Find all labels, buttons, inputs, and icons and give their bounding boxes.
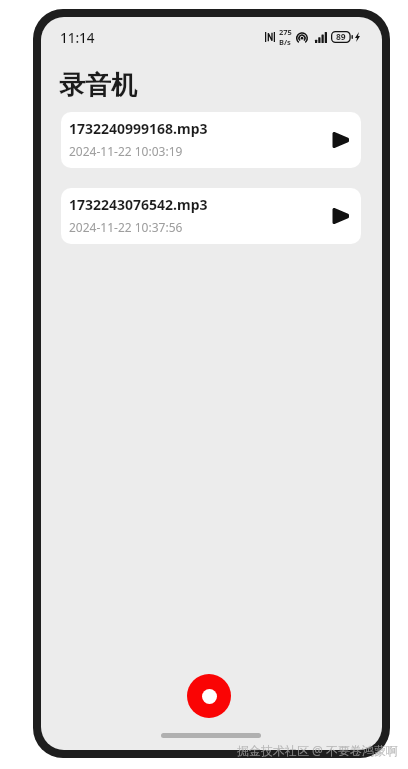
- staticText: 1732243076542.mp3: [69, 195, 208, 214]
- staticText: 275: [279, 27, 292, 37]
- staticText: 1732240999168.mp3: [69, 119, 208, 138]
- button[interactable]: Play: [330, 129, 352, 151]
- button[interactable]: Play: [330, 205, 352, 227]
- staticText: 掘金技术社区 @ 不要卷鸿蒙啊: [237, 742, 399, 758]
- button[interactable]: 1732243076542.mp3: [61, 188, 361, 244]
- button[interactable]: 1732240999168.mp3: [61, 112, 361, 168]
- staticText: 录音机: [59, 69, 137, 102]
- staticText: 89: [336, 31, 346, 43]
- staticText: 2024-11-22 10:03:19: [69, 143, 183, 159]
- button[interactable]: Start recording: [187, 674, 231, 718]
- staticText: 2024-11-22 10:37:56: [69, 219, 183, 235]
- staticText: 11:14: [60, 29, 95, 47]
- staticText: B/s: [279, 37, 291, 47]
